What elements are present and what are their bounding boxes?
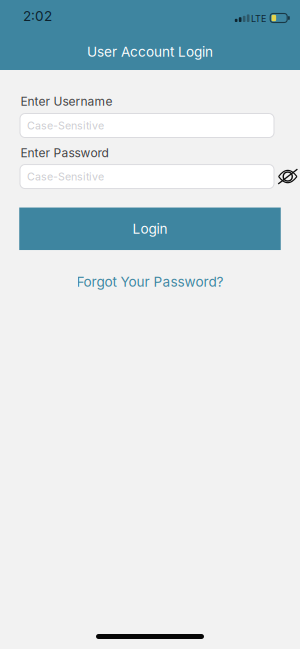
staticText: 2:02	[23, 8, 52, 24]
button[interactable]: Show password	[274, 168, 298, 184]
staticText: LTE	[251, 13, 266, 24]
button[interactable]: Forgot Your Password?	[76, 273, 223, 290]
staticText: Enter Username	[20, 94, 112, 108]
staticText: Case-Sensitive	[27, 170, 104, 183]
staticText: Case-Sensitive	[27, 119, 104, 132]
staticText: Enter Password	[20, 145, 108, 160]
staticText: Login	[132, 221, 167, 237]
button[interactable]: Login	[19, 207, 281, 250]
staticText: Forgot Your Password?	[76, 273, 223, 290]
staticText: User Account Login	[87, 43, 213, 60]
